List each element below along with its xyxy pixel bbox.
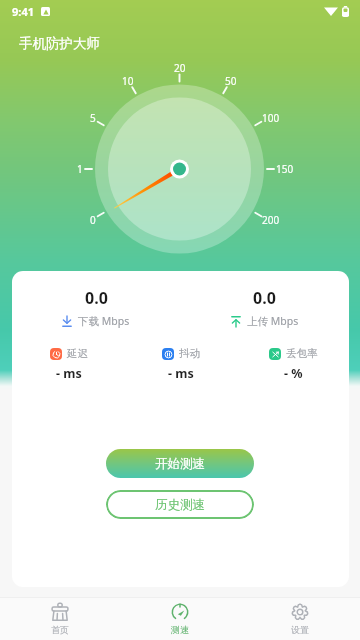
staticText: 20 xyxy=(174,61,186,75)
staticText: 设置 xyxy=(291,624,309,635)
staticText: 0.0 xyxy=(85,287,108,309)
staticText: 9:41 xyxy=(12,4,34,19)
staticText: - % xyxy=(284,365,303,382)
staticText: 上传 Mbps xyxy=(247,314,299,328)
button[interactable]: 测速 xyxy=(120,603,240,635)
staticText: 手机防护大师 xyxy=(19,35,100,52)
button[interactable]: 开始测速 xyxy=(106,449,254,478)
staticText: 200 xyxy=(262,213,280,227)
staticText: - ms xyxy=(168,365,194,382)
staticText: 0 xyxy=(90,213,96,227)
staticText: 丢包率 xyxy=(286,347,318,360)
staticText: - ms xyxy=(56,365,82,382)
staticText: 抖动 xyxy=(179,347,200,360)
staticText: 150 xyxy=(276,162,294,176)
staticText: 10 xyxy=(122,74,134,88)
staticText: 历史测速 xyxy=(155,497,205,513)
staticText: 开始测速 xyxy=(155,456,205,472)
staticText: 1 xyxy=(77,162,83,176)
staticText: 下载 Mbps xyxy=(78,314,130,328)
staticText: 首页 xyxy=(51,624,69,635)
button[interactable]: 设置 xyxy=(240,603,360,635)
staticText: 5 xyxy=(90,111,96,125)
staticText: 延迟 xyxy=(67,347,88,360)
button[interactable]: 首页 xyxy=(0,603,120,635)
staticText: 测速 xyxy=(171,624,189,635)
staticText: 0.0 xyxy=(253,287,276,309)
staticText: 50 xyxy=(225,74,237,88)
button[interactable]: 历史测速 xyxy=(106,490,254,519)
staticText: 100 xyxy=(262,111,280,125)
